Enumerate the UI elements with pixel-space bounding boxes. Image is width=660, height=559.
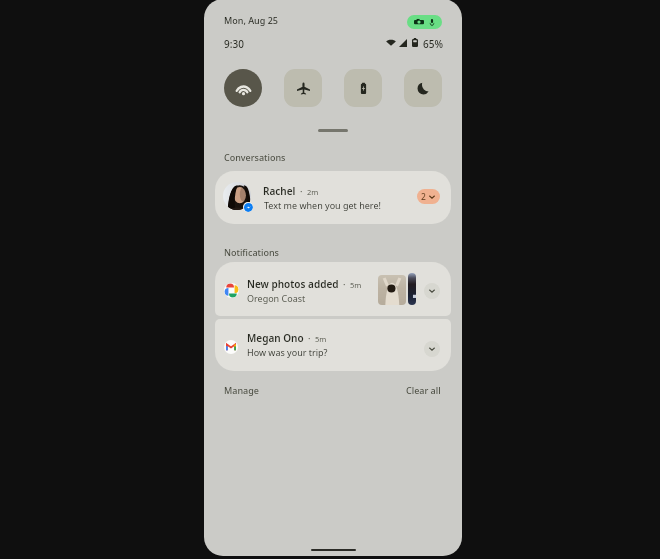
button[interactable]: Internet [224, 69, 262, 107]
button[interactable]: Rachel [215, 171, 451, 224]
button[interactable]: New photos added [215, 262, 451, 316]
staticText: Conversations [224, 151, 286, 163]
staticText: New photos added [247, 277, 339, 291]
button[interactable]: Clear all [404, 382, 443, 398]
staticText: Oregon Coast [247, 292, 306, 304]
staticText: 65% [423, 37, 443, 51]
button[interactable]: Manage [222, 382, 261, 398]
staticText: 9:30 [224, 37, 244, 51]
staticText: Mon, Aug 25 [224, 14, 278, 26]
staticText: 2 [421, 191, 426, 203]
staticText: Rachel [263, 184, 296, 198]
staticText: · [300, 185, 303, 197]
staticText: Notifications [224, 246, 279, 258]
staticText: · [308, 332, 311, 344]
staticText: · [343, 278, 346, 290]
staticText: Megan Ono [247, 331, 304, 345]
button[interactable]: Do not disturb [404, 69, 442, 107]
staticText: Manage [224, 384, 259, 396]
button[interactable]: Battery saver [344, 69, 382, 107]
staticText: 2m [307, 187, 319, 197]
staticText: 5m [315, 334, 327, 344]
button[interactable]: Expand conversation [417, 189, 440, 204]
staticText: Text me when you get here! [264, 199, 381, 211]
button[interactable]: Airplane mode [284, 69, 322, 107]
staticText: 5m [350, 280, 362, 290]
button[interactable]: Megan Ono [215, 319, 451, 371]
button[interactable]: Expand notification [424, 283, 440, 299]
staticText: How was your trip? [247, 346, 328, 358]
button[interactable]: Expand notification [424, 341, 440, 357]
button[interactable]: Camera and microphone active [407, 15, 442, 29]
staticText: Clear all [406, 384, 441, 396]
